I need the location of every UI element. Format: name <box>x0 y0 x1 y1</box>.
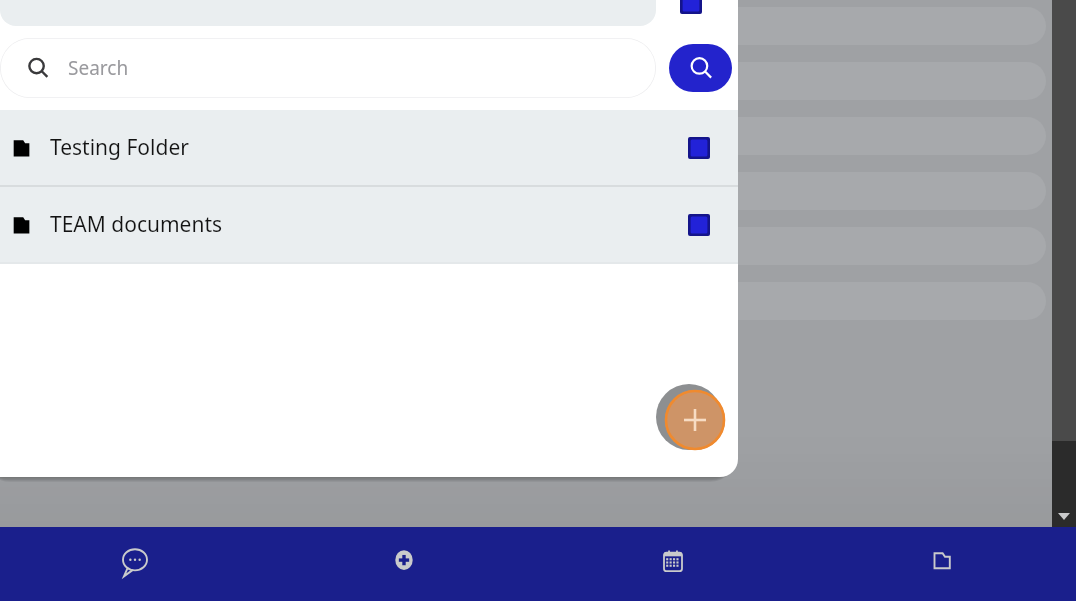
button[interactable]: Calendar <box>538 527 807 601</box>
staticText: Search <box>68 55 129 81</box>
button[interactable]: Search <box>669 44 732 92</box>
button[interactable] <box>688 137 710 159</box>
button[interactable] <box>688 214 710 236</box>
staticText: TEAM documents <box>50 210 223 239</box>
button[interactable]: TEAM documents <box>0 187 738 262</box>
button[interactable]: Files <box>807 527 1076 601</box>
button[interactable] <box>680 0 702 14</box>
staticText: Testing Folder <box>50 133 189 162</box>
button[interactable]: Search <box>0 38 656 98</box>
button[interactable]: Create <box>269 527 538 601</box>
button[interactable]: Chat <box>0 527 269 601</box>
button[interactable]: Testing Folder <box>0 110 738 185</box>
button[interactable]: Add <box>660 386 726 452</box>
